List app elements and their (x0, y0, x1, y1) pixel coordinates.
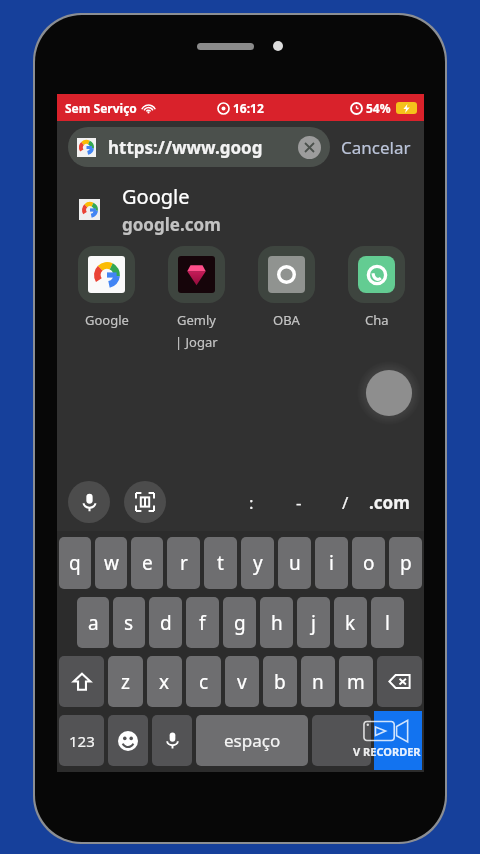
button[interactable]: q (59, 537, 91, 589)
staticText: r (180, 550, 188, 576)
staticText: h (271, 610, 283, 636)
button[interactable]: Go (312, 715, 371, 766)
staticText: Sem Serviço (65, 100, 137, 116)
button[interactable]: n (301, 656, 335, 707)
staticText: .com (369, 491, 410, 514)
button[interactable]: s (113, 597, 145, 648)
button[interactable]: - (275, 482, 322, 522)
button[interactable]: j (297, 597, 330, 648)
button[interactable]: u (278, 537, 311, 589)
staticText: c (199, 669, 209, 695)
button[interactable]: y (241, 537, 274, 589)
button[interactable]: Backspace (377, 656, 422, 707)
staticText: q (69, 550, 81, 576)
button[interactable]: h (260, 597, 293, 648)
button[interactable]: k (334, 597, 367, 648)
button[interactable]: d (149, 597, 182, 648)
button[interactable]: o (352, 537, 385, 589)
button[interactable]: Emoji (108, 715, 148, 766)
staticText: v (237, 669, 247, 695)
button[interactable]: Cha (341, 246, 412, 329)
staticText: 54% (366, 100, 391, 116)
staticText: o (363, 550, 375, 576)
staticText: m (347, 669, 365, 695)
staticText: l (385, 610, 390, 636)
staticText: : (249, 491, 254, 514)
button[interactable]: Google (71, 246, 142, 329)
button[interactable]: g (223, 597, 256, 648)
button[interactable]: e (131, 537, 163, 589)
button[interactable]: w (95, 537, 127, 589)
button[interactable]: a (77, 597, 109, 648)
staticText: s (124, 610, 134, 636)
button[interactable]: Cancelar (339, 128, 413, 167)
staticText: b (274, 669, 286, 695)
button[interactable]: m (339, 656, 373, 707)
staticText: j (311, 610, 316, 636)
staticText: V RECORDER (353, 744, 421, 759)
button[interactable]: / (322, 482, 369, 522)
staticText: f (199, 610, 206, 636)
button[interactable]: Voice search (68, 481, 110, 523)
button[interactable]: Clear text (298, 136, 321, 159)
button[interactable]: b (263, 656, 297, 707)
staticText: d (160, 610, 172, 636)
staticText: espaço (224, 729, 281, 752)
staticText: n (312, 669, 324, 695)
staticText: OBA (273, 311, 300, 329)
staticText: Google (85, 311, 129, 329)
staticText: u (289, 550, 301, 576)
staticText: Cha (365, 311, 389, 329)
button[interactable]: v (225, 656, 259, 707)
staticText: - (296, 491, 302, 514)
staticText: google.com (122, 213, 221, 236)
staticText: | Jogar (175, 333, 218, 351)
button[interactable]: l (371, 597, 404, 648)
staticText: 123 (69, 731, 95, 751)
staticText: 16:12 (233, 100, 264, 116)
button[interactable]: Shift (59, 656, 104, 707)
button[interactable]: 123 (59, 715, 104, 766)
staticText: t (217, 550, 224, 576)
button[interactable]: : (228, 482, 275, 522)
button[interactable]: c (186, 656, 221, 707)
button[interactable]: https://www.goog (68, 127, 330, 167)
staticText: k (345, 610, 356, 636)
button[interactable]: f (186, 597, 219, 648)
button[interactable]: i (315, 537, 348, 589)
button[interactable]: p (389, 537, 422, 589)
button[interactable]: t (204, 537, 237, 589)
button[interactable]: espaço (196, 715, 308, 766)
staticText: p (400, 550, 412, 576)
staticText: y (253, 550, 263, 576)
button[interactable]: .com (369, 482, 410, 522)
staticText: https://www.goog (108, 136, 263, 159)
button[interactable]: z (108, 656, 143, 707)
button[interactable]: x (147, 656, 182, 707)
staticText: Gemly (177, 311, 216, 329)
staticText: z (121, 669, 130, 695)
staticText: Google (122, 183, 190, 210)
button[interactable]: Google (57, 173, 424, 246)
staticText: w (104, 550, 119, 576)
staticText: Cancelar (341, 136, 411, 159)
staticText: / (342, 491, 349, 514)
button[interactable]: r (167, 537, 200, 589)
button[interactable]: Gemly (161, 246, 232, 351)
button[interactable]: Scan code (124, 481, 166, 523)
staticText: i (329, 550, 334, 576)
staticText: e (142, 550, 153, 576)
staticText: g (234, 610, 246, 636)
staticText: x (159, 669, 170, 695)
button[interactable]: Voice input (152, 715, 192, 766)
button[interactable]: OBA (251, 246, 322, 329)
staticText: a (88, 610, 99, 636)
button[interactable]: Enter (374, 711, 422, 770)
